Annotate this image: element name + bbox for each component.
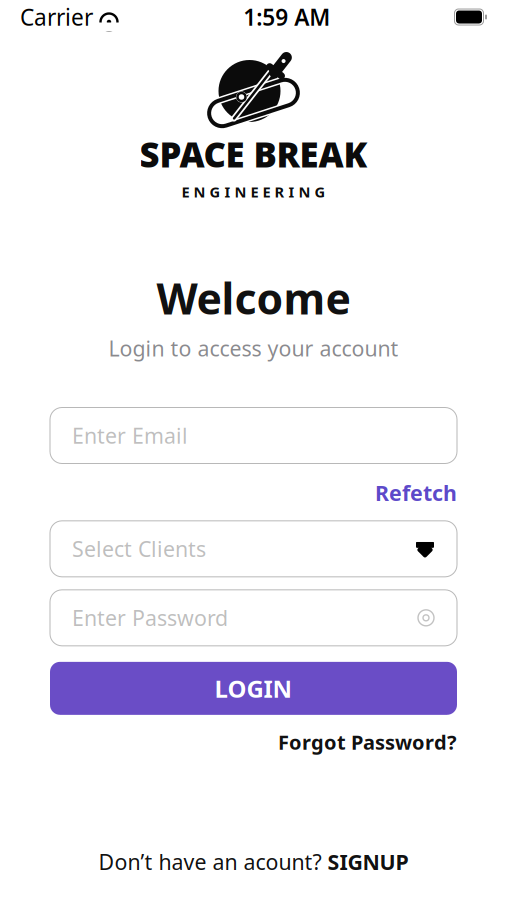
staticText: LOGIN — [214, 672, 292, 704]
staticText: SPACE BREAK — [139, 131, 367, 177]
staticText: Welcome — [156, 269, 350, 326]
staticText: Enter Password — [72, 604, 228, 632]
staticText: SIGNUP — [327, 848, 408, 876]
staticText: Enter Email — [72, 421, 188, 450]
button[interactable]: Select Clients — [50, 521, 457, 577]
staticText: Don’t have an acount? — [98, 848, 321, 876]
button[interactable]: Forgot Password? — [278, 727, 457, 757]
staticText: Carrier — [20, 2, 93, 32]
staticText: Refetch — [375, 478, 457, 507]
button[interactable]: Enter Password — [50, 590, 457, 646]
button[interactable]: Enter Email — [50, 407, 457, 463]
staticText: Forgot Password? — [278, 729, 457, 755]
button[interactable]: Refetch — [375, 476, 457, 509]
button[interactable]: LOGIN — [50, 662, 457, 715]
button[interactable]: Don’t have an acount? — [88, 842, 418, 882]
staticText: Select Clients — [72, 535, 206, 563]
staticText: Login to access your account — [108, 334, 398, 362]
staticText: E N G I N E E R I N G — [181, 182, 325, 201]
staticText: 1:59 AM — [243, 2, 330, 32]
